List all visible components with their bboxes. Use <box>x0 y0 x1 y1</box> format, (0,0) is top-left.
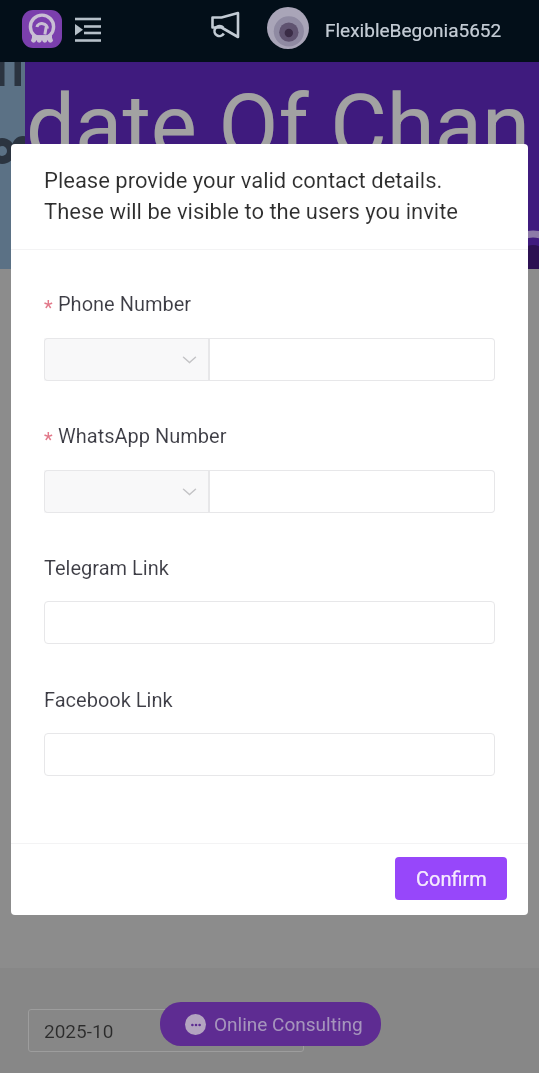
button[interactable]: Number <box>209 338 495 381</box>
staticText: date Of Chan <box>26 75 531 177</box>
button[interactable]: Country code <box>44 470 209 513</box>
staticText: Online Consulting <box>214 1013 363 1035</box>
button[interactable]: Number <box>209 470 495 513</box>
staticText: 2025-10 <box>44 1020 114 1042</box>
button[interactable]: 2025-10 <box>28 1009 304 1052</box>
staticText: Telegram Link <box>44 556 169 579</box>
button[interactable]: Profile <box>267 7 309 49</box>
staticText: WhatsApp Number <box>58 424 227 447</box>
staticText: FlexibleBegonia5652 <box>325 19 502 41</box>
button[interactable]: Country code <box>44 338 209 381</box>
button[interactable]: Menu <box>71 15 105 45</box>
button[interactable]: Text input <box>44 601 495 644</box>
staticText: Confirm <box>416 867 487 890</box>
button[interactable]: Online Consulting <box>160 1002 381 1046</box>
button[interactable]: App logo <box>22 10 62 48</box>
button[interactable]: Text input <box>44 733 495 776</box>
staticText: * <box>44 428 53 451</box>
button[interactable]: Announcements <box>208 9 242 41</box>
staticText: * <box>44 296 53 319</box>
button[interactable]: Confirm <box>395 857 507 900</box>
staticText: Facebook Link <box>44 688 173 711</box>
staticText: Please provide your valid contact detail… <box>44 168 459 224</box>
staticText: Phone Number <box>58 292 192 315</box>
